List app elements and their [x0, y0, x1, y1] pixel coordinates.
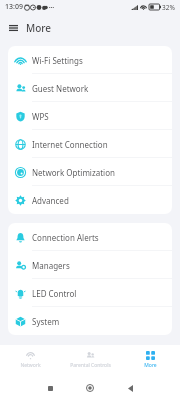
button[interactable]: Managers [8, 251, 172, 279]
button[interactable]: Network Optimization [8, 158, 172, 186]
button[interactable]: Back [118, 376, 142, 400]
staticText: Managers [32, 260, 70, 271]
button[interactable]: Connection Alerts [8, 223, 172, 251]
staticText: Internet Connection [32, 139, 108, 150]
staticText: Parental Controls [70, 362, 111, 369]
staticText: Connection Alerts [32, 232, 99, 243]
button[interactable]: Parental Controls [60, 345, 120, 375]
staticText: More [144, 362, 157, 369]
staticText: More [26, 21, 52, 35]
button[interactable]: Menu [0, 17, 26, 38]
staticText: Network Optimization [32, 167, 115, 178]
button[interactable]: More [120, 345, 180, 375]
staticText: Guest Network [32, 83, 89, 94]
button[interactable]: Network [0, 345, 60, 375]
staticText: System [32, 316, 60, 327]
button[interactable]: Wi-Fi Settings [8, 46, 172, 74]
staticText: Advanced [32, 195, 69, 206]
staticText: Network [20, 362, 41, 369]
staticText: Wi-Fi Settings [32, 55, 83, 66]
button[interactable]: System [8, 307, 172, 335]
button[interactable]: Advanced [8, 186, 172, 214]
button[interactable]: Internet Connection [8, 130, 172, 158]
button[interactable]: Home [78, 376, 102, 400]
button[interactable]: Guest Network [8, 74, 172, 102]
button[interactable]: WPS [8, 102, 172, 130]
staticText: 32% [162, 3, 175, 12]
staticText: WPS [32, 111, 49, 122]
button[interactable]: Recents [38, 376, 62, 400]
staticText: 13:09 [5, 2, 23, 12]
button[interactable]: LED Control [8, 279, 172, 307]
staticText: LED Control [32, 288, 77, 299]
